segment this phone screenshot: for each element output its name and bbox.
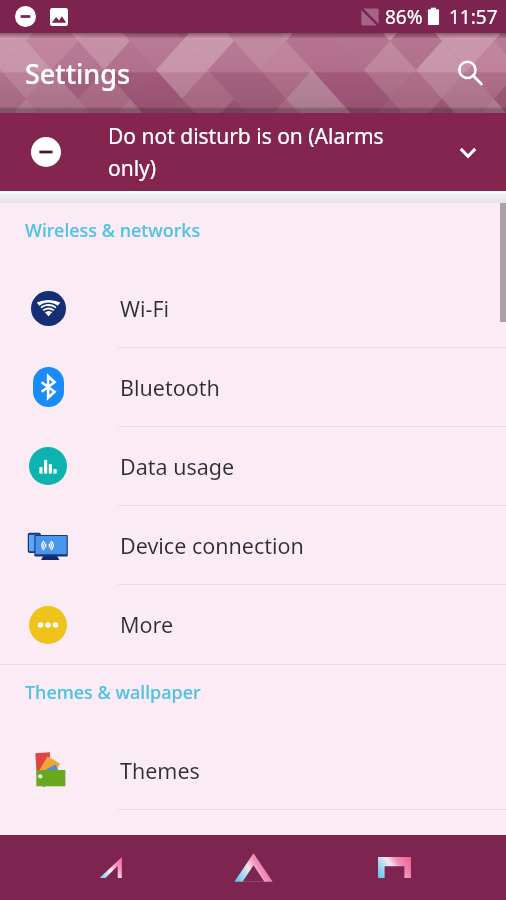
staticText: Bluetooth [120,373,220,402]
button[interactable]: Home [217,835,290,900]
button[interactable]: More [0,585,506,664]
button[interactable]: Recents [358,835,431,900]
staticText: Settings [25,55,131,92]
button[interactable]: Bluetooth [0,348,506,427]
staticText: Wireless & networks [25,218,201,243]
staticText: Themes & wallpaper [25,680,201,705]
staticText: 11:57 [449,4,498,30]
button[interactable]: Expand [452,136,484,168]
button[interactable]: Themes [0,731,506,810]
button[interactable]: Device connection [0,506,506,585]
button[interactable]: Back [75,835,148,900]
staticText: 86% [385,4,423,30]
staticText: Wi-Fi [120,294,170,323]
staticText: Do not disturb is on (Alarms only) [108,122,430,182]
button[interactable]: Search [446,49,494,97]
staticText: Data usage [120,452,235,481]
button[interactable]: Do not disturb is on (Alarms only) [0,113,506,191]
staticText: Themes [120,756,200,785]
staticText: More [120,610,174,639]
button[interactable]: Data usage [0,427,506,506]
staticText: Device connection [120,531,304,560]
button[interactable]: Wi-Fi [0,269,506,348]
